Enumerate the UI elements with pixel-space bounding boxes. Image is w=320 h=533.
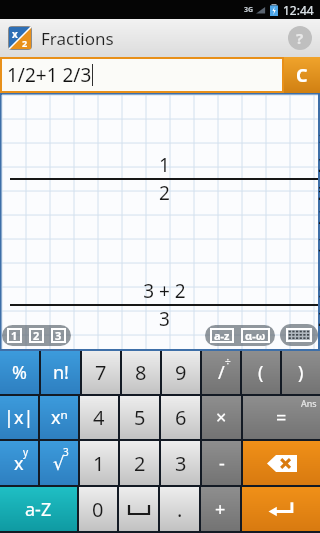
staticText: 2 — [159, 180, 170, 206]
staticText: √ — [53, 453, 65, 474]
button[interactable]: α-ω — [245, 328, 266, 343]
button[interactable]: Enter — [242, 487, 320, 531]
button[interactable]: x — [0, 441, 38, 485]
staticText: 9 — [175, 359, 187, 386]
button[interactable]: Keyboard — [286, 328, 312, 342]
button[interactable]: a-z — [214, 328, 230, 343]
staticText: 2 — [134, 450, 146, 477]
button[interactable]: . — [160, 487, 199, 531]
staticText: C — [296, 63, 308, 88]
staticText: 3 + 2 — [143, 278, 186, 304]
button[interactable]: = — [243, 396, 320, 439]
button[interactable]: × — [202, 396, 241, 439]
staticText: 6 — [175, 404, 187, 431]
staticText: Fractions — [41, 27, 114, 50]
staticText: ) — [298, 360, 304, 385]
staticText: 8 — [135, 359, 147, 386]
staticText: - — [219, 451, 225, 476]
staticText: a-z — [214, 328, 230, 343]
staticText: 1 — [93, 450, 105, 477]
staticText: 3G — [244, 5, 254, 15]
button[interactable]: % — [0, 351, 39, 394]
staticText: + — [215, 497, 226, 522]
staticText: 0 — [92, 496, 104, 523]
staticText: 3 — [175, 450, 187, 477]
staticText: 3 — [55, 328, 62, 343]
button[interactable]: 3 — [161, 441, 200, 485]
button[interactable]: 0 — [79, 487, 117, 531]
staticText: / — [218, 360, 225, 385]
staticText: 3 — [63, 445, 69, 459]
staticText: a-Z — [25, 497, 52, 522]
button[interactable]: 7 — [82, 351, 120, 394]
staticText: 4 — [93, 404, 105, 431]
staticText: Ans — [301, 397, 317, 409]
staticText: 1 — [159, 152, 170, 178]
button[interactable]: + — [201, 487, 240, 531]
button[interactable]: n! — [41, 351, 80, 394]
staticText: . — [177, 496, 183, 523]
staticText: 2 — [22, 37, 28, 49]
button[interactable]: 9 — [162, 351, 200, 394]
button[interactable]: 3 — [55, 328, 62, 343]
staticText: ? — [296, 28, 304, 48]
button[interactable]: 5 — [120, 396, 159, 439]
staticText: x — [14, 451, 24, 476]
button[interactable]: - — [202, 441, 241, 485]
button[interactable]: 6 — [161, 396, 200, 439]
button[interactable]: 1 — [80, 441, 118, 485]
button[interactable]: a-Z — [0, 487, 77, 531]
staticText: % — [12, 360, 27, 385]
staticText: 2 — [33, 328, 40, 343]
button[interactable]: Backspace — [243, 441, 320, 485]
staticText: ÷ — [225, 355, 231, 369]
staticText: 1 — [11, 328, 18, 343]
staticText: n! — [53, 360, 69, 385]
staticText: x — [12, 27, 18, 41]
staticText: 7 — [95, 359, 107, 386]
staticText: × — [216, 405, 227, 430]
button[interactable]: xⁿ — [40, 396, 78, 439]
staticText: y — [23, 445, 29, 459]
staticText: 12:44 — [283, 2, 314, 18]
button[interactable]: 1 — [11, 328, 18, 343]
staticText: 1/2+1 2/3 — [7, 62, 92, 88]
button[interactable]: ) — [282, 351, 320, 394]
staticText: = — [276, 405, 287, 430]
button[interactable]: 2 — [120, 441, 159, 485]
staticText: 5 — [134, 404, 146, 431]
staticText: xⁿ — [51, 405, 68, 430]
button[interactable]: C — [284, 57, 320, 93]
button[interactable]: Help — [288, 26, 312, 50]
button[interactable]: √ — [40, 441, 78, 485]
button[interactable]: 8 — [122, 351, 160, 394]
button[interactable]: / — [202, 351, 240, 394]
staticText: 3 — [159, 306, 170, 332]
staticText: α-ω — [245, 328, 266, 343]
staticText: |x| — [4, 405, 34, 430]
button[interactable]: Space — [119, 487, 158, 531]
button[interactable]: |x| — [0, 396, 38, 439]
staticText: ( — [258, 360, 264, 385]
button[interactable]: 1/2+1 2/3 — [2, 59, 282, 91]
button[interactable]: 4 — [80, 396, 118, 439]
button[interactable]: ( — [242, 351, 280, 394]
button[interactable]: 2 — [33, 328, 40, 343]
